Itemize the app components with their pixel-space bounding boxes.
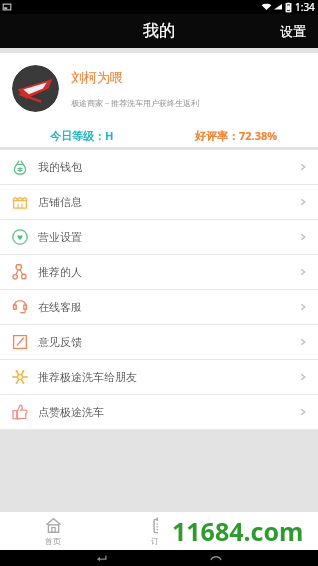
button[interactable]: 刘柯为喂 [0, 53, 318, 123]
staticText: 极途商家－推荐洗车用户获终生返利 [71, 98, 199, 108]
button[interactable]: 推荐的人 [0, 255, 318, 289]
staticText: 推荐的人 [38, 265, 82, 279]
staticText: 店铺信息 [38, 195, 82, 209]
staticText: 意见反馈 [38, 335, 82, 349]
staticText: 点赞极途洗车 [38, 405, 104, 419]
button[interactable]: 推荐极途洗车给朋友 [0, 360, 318, 394]
staticText: 订单 [151, 536, 167, 546]
button[interactable]: 营业设置 [0, 220, 318, 254]
button[interactable]: 点赞极途洗车 [0, 395, 318, 429]
staticText: 11684.com [172, 514, 304, 548]
button[interactable]: 在线客服 [0, 290, 318, 324]
staticText: 在线客服 [38, 300, 82, 314]
button[interactable]: 设置 [268, 14, 318, 48]
button[interactable]: Home [203, 550, 229, 566]
button[interactable]: 首页 [0, 512, 106, 550]
staticText: 今日等级：H [50, 128, 114, 143]
button[interactable]: Back [88, 550, 114, 566]
staticText: 刘柯为喂 [71, 69, 123, 85]
button[interactable]: 意见反馈 [0, 325, 318, 359]
staticText: 1:34 [295, 0, 315, 14]
button[interactable]: 订单 [106, 512, 212, 550]
button[interactable]: 我的钱包 [0, 150, 318, 184]
staticText: 设置 [280, 23, 306, 39]
button[interactable]: 店铺信息 [0, 185, 318, 219]
staticText: 推荐极途洗车给朋友 [38, 370, 137, 384]
staticText: 好评率：72.38% [195, 128, 278, 143]
staticText: 我的钱包 [38, 160, 82, 174]
staticText: 我的 [143, 21, 175, 41]
staticText: 首页 [45, 536, 61, 546]
staticText: 营业设置 [38, 230, 82, 244]
